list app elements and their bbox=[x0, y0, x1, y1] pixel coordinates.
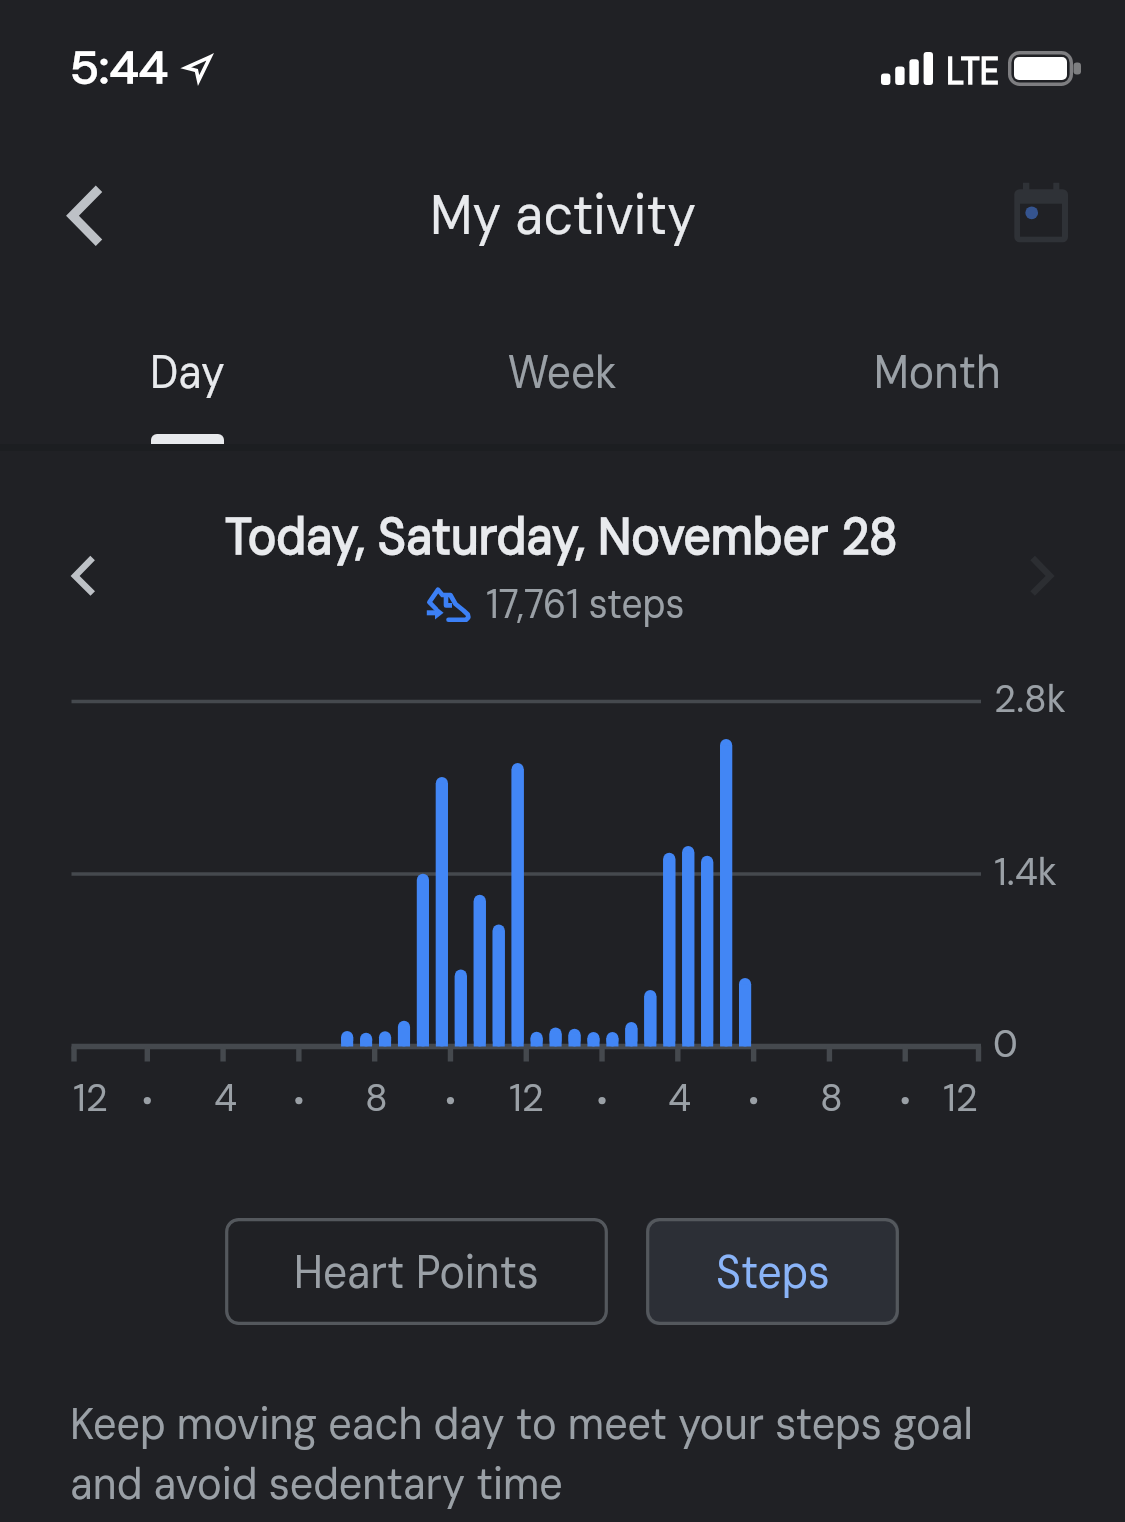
staticText: Keep moving each day to meet your steps … bbox=[70, 1394, 973, 1513]
staticText: LTE bbox=[946, 45, 1000, 96]
staticText: 12 bbox=[73, 1073, 109, 1122]
staticText: 12 bbox=[509, 1073, 545, 1122]
staticText: Week bbox=[508, 341, 617, 402]
staticText: 1.4k bbox=[994, 847, 1057, 896]
button[interactable]: Day bbox=[0, 340, 375, 444]
button[interactable]: Back bbox=[30, 174, 110, 260]
button[interactable]: Next day bbox=[1020, 540, 1070, 612]
staticText: Steps bbox=[716, 1241, 830, 1302]
staticText: 8 bbox=[365, 1073, 388, 1122]
staticText: Heart Points bbox=[294, 1241, 539, 1302]
staticText: 17,761 steps bbox=[486, 577, 685, 630]
staticText: 2.8k bbox=[994, 674, 1066, 723]
staticText: Today, Saturday, November 28 bbox=[225, 503, 898, 569]
staticText: 4 bbox=[668, 1073, 692, 1122]
button[interactable]: Month bbox=[750, 340, 1125, 444]
button[interactable]: Steps bbox=[646, 1218, 899, 1325]
staticText: 12 bbox=[943, 1073, 979, 1122]
staticText: 4 bbox=[214, 1073, 238, 1122]
button[interactable]: Heart Points bbox=[225, 1218, 608, 1325]
button[interactable]: Calendar bbox=[1010, 179, 1072, 244]
staticText: 0 bbox=[993, 1019, 1018, 1068]
button[interactable]: Week bbox=[375, 340, 750, 444]
staticText: My activity bbox=[430, 178, 696, 251]
button[interactable]: Previous day bbox=[55, 540, 105, 612]
staticText: Month bbox=[874, 341, 1001, 402]
staticText: Day bbox=[150, 341, 225, 402]
staticText: 5:44 bbox=[70, 39, 168, 96]
staticText: 8 bbox=[820, 1073, 843, 1122]
